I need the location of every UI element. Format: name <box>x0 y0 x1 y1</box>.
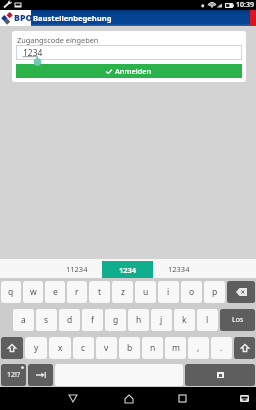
button[interactable]: w <box>23 281 43 303</box>
button[interactable]: , <box>188 337 209 359</box>
staticText: h <box>136 314 142 326</box>
button[interactable]: . <box>211 337 232 359</box>
staticText: 10:39 <box>236 0 254 10</box>
button[interactable]: Anmelden <box>16 64 242 78</box>
button[interactable]: Recents <box>171 387 194 410</box>
staticText: BPO <box>14 12 33 24</box>
button[interactable]: Los <box>220 309 255 331</box>
staticText: , <box>197 342 200 354</box>
button[interactable]: s <box>36 309 57 331</box>
staticText: k <box>182 314 187 326</box>
staticText: m <box>172 342 180 354</box>
staticText: r <box>75 286 79 298</box>
staticText: a <box>21 314 26 326</box>
staticText: n <box>150 342 156 354</box>
button[interactable]: Shift <box>1 337 23 359</box>
staticText: l <box>206 314 209 326</box>
button[interactable]: h <box>128 309 149 331</box>
staticText: w <box>30 286 37 298</box>
staticText: c <box>81 342 86 354</box>
staticText: 12!? <box>7 370 20 380</box>
button[interactable]: 1234 <box>102 261 153 278</box>
button[interactable]: r <box>67 281 87 303</box>
staticText: Los <box>232 315 244 325</box>
button[interactable]: Home <box>117 387 140 410</box>
staticText: e <box>53 286 58 298</box>
staticText: x <box>58 342 63 354</box>
button[interactable]: o <box>181 281 202 303</box>
staticText: o <box>189 286 195 298</box>
button[interactable]: z <box>112 281 133 303</box>
staticText: Zugangscode eingeben <box>17 35 99 45</box>
staticText: . <box>220 342 223 354</box>
staticText: q <box>8 286 14 298</box>
staticText: p <box>212 286 218 298</box>
button[interactable]: Back <box>61 387 84 410</box>
button[interactable]: Shift <box>234 337 255 359</box>
button[interactable]: x <box>49 337 71 359</box>
staticText: v <box>104 342 109 354</box>
staticText: 11234 <box>66 264 88 274</box>
staticText: Anmelden <box>115 66 152 76</box>
button[interactable]: q <box>1 281 21 303</box>
button[interactable]: v <box>96 337 117 359</box>
staticText: f <box>91 314 94 326</box>
button[interactable]: k <box>174 309 195 331</box>
button[interactable]: 12334 <box>153 259 204 278</box>
staticText: t <box>98 286 102 298</box>
button[interactable]: l <box>197 309 218 331</box>
button[interactable]: n <box>142 337 163 359</box>
staticText: s <box>44 314 49 326</box>
button[interactable]: Tab <box>28 364 53 386</box>
button[interactable]: Backspace <box>227 281 255 303</box>
staticText: z <box>121 286 125 298</box>
button[interactable]: e <box>45 281 65 303</box>
button[interactable]: i <box>158 281 179 303</box>
button[interactable]: 11234 <box>51 259 102 278</box>
button[interactable]: g <box>105 309 126 331</box>
button[interactable]: Enter <box>185 364 255 386</box>
button[interactable]: j <box>151 309 172 331</box>
staticText: b <box>127 342 133 354</box>
staticText: 1234 <box>119 265 137 275</box>
button[interactable]: 1234 <box>16 45 242 60</box>
staticText: i <box>167 286 170 298</box>
staticText: g <box>113 314 119 326</box>
button[interactable]: 12!? <box>1 364 26 386</box>
button[interactable]: p <box>204 281 225 303</box>
button[interactable]: t <box>89 281 110 303</box>
button[interactable]: y <box>25 337 47 359</box>
staticText: 12334 <box>168 264 190 274</box>
staticText: u <box>143 286 149 298</box>
button[interactable]: Keyboard <box>238 392 251 405</box>
button[interactable]: c <box>73 337 94 359</box>
button[interactable]: f <box>82 309 103 331</box>
staticText: Baustellenbegehung <box>33 13 112 23</box>
button[interactable]: u <box>135 281 156 303</box>
staticText: 1234 <box>23 47 43 59</box>
button[interactable]: m <box>165 337 186 359</box>
button[interactable]: b <box>119 337 140 359</box>
button[interactable]: a <box>13 309 34 331</box>
staticText: j <box>160 314 163 326</box>
staticText: d <box>67 314 73 326</box>
button[interactable]: d <box>59 309 80 331</box>
staticText: y <box>34 342 39 354</box>
